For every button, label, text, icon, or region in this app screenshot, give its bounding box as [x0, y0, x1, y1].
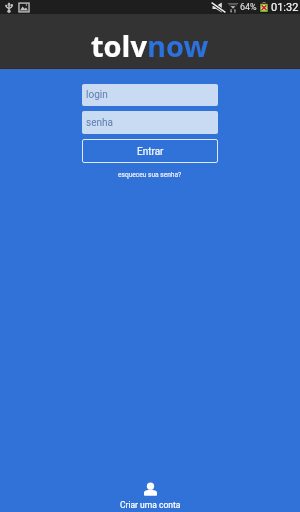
staticText: now — [147, 26, 209, 65]
button[interactable]: Criar uma conta — [0, 483, 300, 512]
button[interactable]: login — [82, 84, 218, 106]
button[interactable]: Entrar — [82, 139, 218, 163]
staticText: Criar uma conta — [120, 500, 181, 510]
staticText: Entrar — [137, 146, 164, 158]
staticText: senha — [86, 117, 113, 129]
staticText: 01:32 — [271, 1, 299, 14]
staticText: 64% — [240, 2, 257, 13]
button[interactable]: senha — [82, 111, 218, 134]
staticText: login — [86, 89, 108, 101]
staticText: tolv — [91, 26, 147, 65]
button[interactable]: esqueceu sua senha? — [118, 171, 182, 179]
